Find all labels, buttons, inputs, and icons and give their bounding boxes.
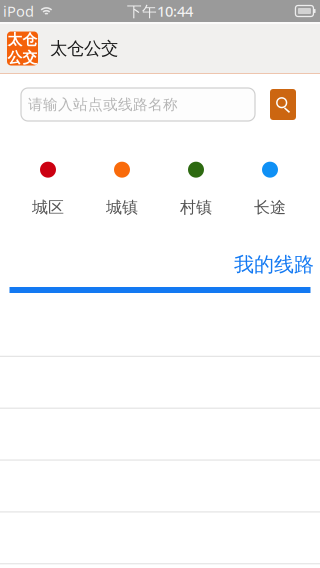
staticText: 太仓 <box>7 30 37 48</box>
staticText: 太仓公交 <box>50 38 118 59</box>
button[interactable]: 我的线路 <box>234 254 314 275</box>
button[interactable] <box>0 512 320 564</box>
button[interactable]: 搜索 <box>270 89 296 120</box>
staticText: 村镇 <box>180 198 212 217</box>
staticText: iPod <box>3 1 34 21</box>
button[interactable]: 长途 <box>233 164 307 215</box>
button[interactable] <box>0 409 320 461</box>
button[interactable]: 村镇 <box>159 164 233 215</box>
staticText: 下午10:44 <box>127 1 193 21</box>
button[interactable]: 城镇 <box>85 164 159 215</box>
staticText: 请输入站点或线路名称 <box>28 95 178 113</box>
button[interactable]: 太仓公交 <box>7 31 38 65</box>
staticText: 我的线路 <box>234 252 314 277</box>
staticText: 城区 <box>32 198 64 217</box>
staticText: 城镇 <box>106 198 138 217</box>
button[interactable] <box>0 305 320 357</box>
button[interactable] <box>0 357 320 409</box>
staticText: 公交 <box>7 48 37 66</box>
staticText: 长途 <box>254 198 286 217</box>
button[interactable]: 城区 <box>11 164 85 215</box>
button[interactable] <box>0 461 320 513</box>
